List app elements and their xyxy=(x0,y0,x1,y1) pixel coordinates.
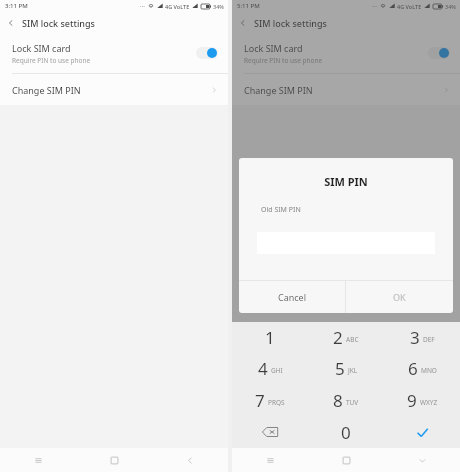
staticText: 3:11 PM xyxy=(5,2,28,10)
staticText: Require PIN to use phone xyxy=(12,56,91,65)
button[interactable]: Lock SIM card xyxy=(0,33,228,73)
staticText: 3 xyxy=(410,326,420,349)
button[interactable]: Back xyxy=(232,12,254,33)
staticText: 4 xyxy=(258,357,268,380)
button[interactable]: Delete xyxy=(232,416,308,448)
staticText: 4G VoLTE xyxy=(397,3,422,10)
staticText: Cancel xyxy=(278,291,307,303)
staticText: Lock SIM card xyxy=(12,42,71,54)
button[interactable]: Change SIM PIN xyxy=(0,74,228,105)
button[interactable]: 8 xyxy=(308,384,384,416)
staticText: 6 xyxy=(408,357,418,380)
button[interactable]: Back xyxy=(0,12,22,33)
staticText: 4G VoLTE xyxy=(165,3,190,10)
staticText: 5:11 PM xyxy=(237,2,260,10)
button[interactable]: Lock SIM card toggle xyxy=(428,47,450,59)
staticText: ··· xyxy=(140,2,145,10)
staticText: ··· xyxy=(372,2,377,10)
staticText: 9 xyxy=(407,389,417,412)
staticText: SIM PIN xyxy=(239,174,453,189)
staticText: Old SIM PIN xyxy=(261,205,301,215)
button[interactable]: 9 xyxy=(384,384,460,416)
staticText: 34% xyxy=(213,3,224,10)
staticText: 5 xyxy=(335,357,345,380)
staticText: 7 xyxy=(255,389,265,412)
staticText: ABC xyxy=(346,335,359,344)
staticText: 2 xyxy=(333,326,343,349)
button[interactable]: Lock SIM card xyxy=(232,33,460,73)
staticText: JKL xyxy=(348,366,358,375)
staticText: MNO xyxy=(421,366,437,375)
staticText: TUV xyxy=(346,398,359,407)
staticText: 0 xyxy=(341,421,351,444)
staticText: 34% xyxy=(445,3,456,10)
button[interactable]: 0 xyxy=(308,416,384,448)
staticText: SIM lock settings xyxy=(22,17,95,29)
staticText: Require PIN to use phone xyxy=(244,56,323,65)
button[interactable]: 6 xyxy=(384,353,460,384)
button[interactable]: Recents xyxy=(232,448,308,472)
button[interactable]: 4 xyxy=(232,353,308,384)
staticText: Lock SIM card xyxy=(244,42,303,54)
button[interactable]: 2 xyxy=(308,322,384,353)
button[interactable]: Lock SIM card toggle xyxy=(196,47,218,59)
staticText: Change SIM PIN xyxy=(12,84,210,96)
staticText: SIM lock settings xyxy=(254,17,327,29)
button[interactable]: Change SIM PIN xyxy=(232,74,460,105)
staticText: Change SIM PIN xyxy=(244,84,442,96)
staticText: OK xyxy=(393,291,406,303)
button[interactable]: Recents xyxy=(0,448,76,472)
staticText: GHI xyxy=(271,366,283,375)
button[interactable]: Enter xyxy=(384,416,460,448)
staticText: PRQS xyxy=(268,398,285,407)
staticText: WXYZ xyxy=(420,398,438,407)
button[interactable]: Cancel xyxy=(239,281,345,313)
button[interactable]: Home xyxy=(308,448,384,472)
button[interactable]: 1 xyxy=(232,322,308,353)
button[interactable]: OK xyxy=(346,281,453,313)
staticText: DEF xyxy=(423,335,435,344)
button[interactable]: Home xyxy=(76,448,152,472)
staticText: 8 xyxy=(333,389,343,412)
staticText: 1 xyxy=(265,326,275,349)
button[interactable]: 7 xyxy=(232,384,308,416)
button[interactable]: 5 xyxy=(308,353,384,384)
button[interactable]: 3 xyxy=(384,322,460,353)
